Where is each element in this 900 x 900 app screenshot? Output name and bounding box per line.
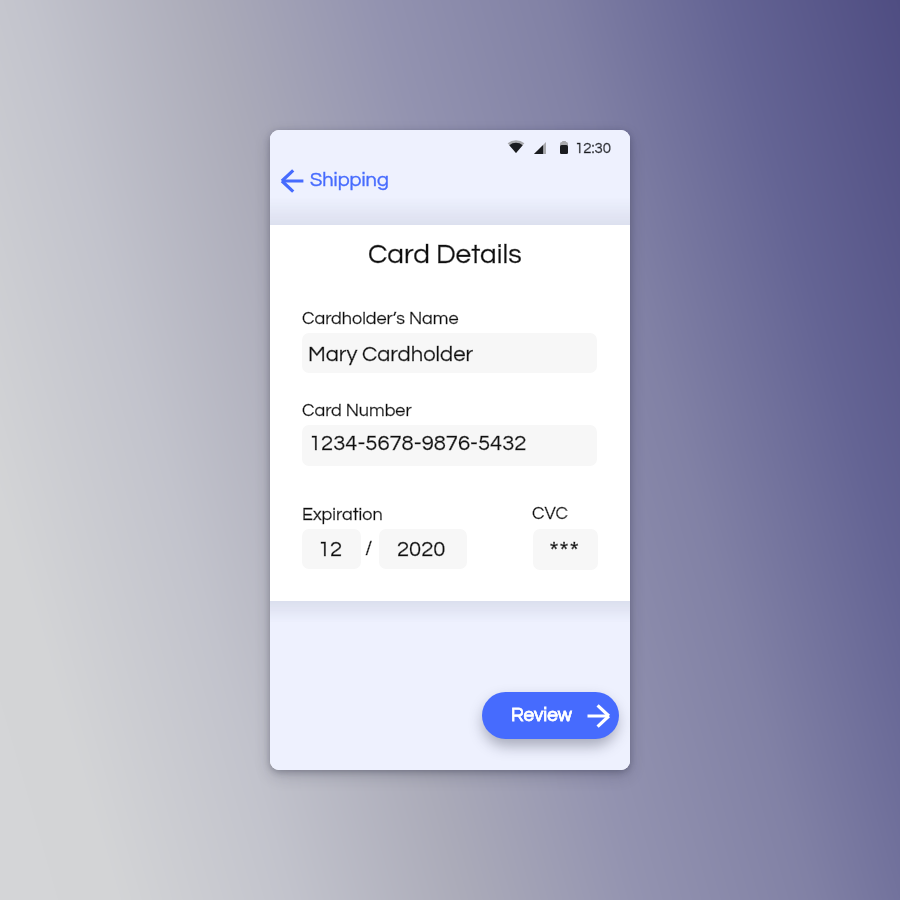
staticText: CVC — [532, 504, 568, 523]
staticText: Card Details — [368, 240, 522, 269]
staticText: Cardholder’s Name — [302, 309, 459, 328]
button[interactable]: Review — [482, 692, 619, 739]
staticText: *** — [549, 538, 580, 566]
staticText: / — [365, 538, 373, 559]
staticText: Card Details — [368, 240, 522, 269]
staticText: Shipping — [310, 170, 389, 191]
button[interactable]: 12 — [302, 529, 361, 569]
staticText: 12 — [318, 538, 343, 561]
staticText: 2020 — [397, 538, 446, 561]
staticText: Card Number — [302, 401, 412, 420]
staticText: CVC — [532, 504, 568, 523]
other: Back — [281, 169, 305, 193]
staticText: Review — [511, 705, 573, 725]
staticText: 12:30 — [575, 141, 612, 156]
button[interactable]: 1234-5678-9876-5432 — [302, 425, 597, 466]
staticText: Review — [511, 705, 573, 725]
staticText: 1234-5678-9876-5432 — [309, 432, 527, 455]
staticText: Expiration — [302, 505, 383, 524]
button[interactable]: *** — [533, 529, 598, 570]
staticText: Mary Cardholder — [308, 343, 474, 366]
staticText: 2020 — [397, 538, 446, 561]
staticText: Expiration — [302, 505, 383, 524]
button[interactable]: 2020 — [379, 529, 467, 569]
staticText: Shipping — [310, 170, 389, 191]
staticText: *** — [549, 538, 580, 566]
button[interactable]: Mary Cardholder — [302, 333, 597, 373]
staticText: Cardholder’s Name — [302, 309, 459, 328]
button[interactable]: Back — [276, 163, 394, 199]
staticText: 12 — [318, 538, 343, 561]
staticText: Mary Cardholder — [308, 343, 474, 366]
staticText: 1234-5678-9876-5432 — [309, 432, 527, 455]
staticText: / — [365, 538, 373, 559]
staticText: Card Number — [302, 401, 412, 420]
staticText: 12:30 — [575, 141, 612, 156]
